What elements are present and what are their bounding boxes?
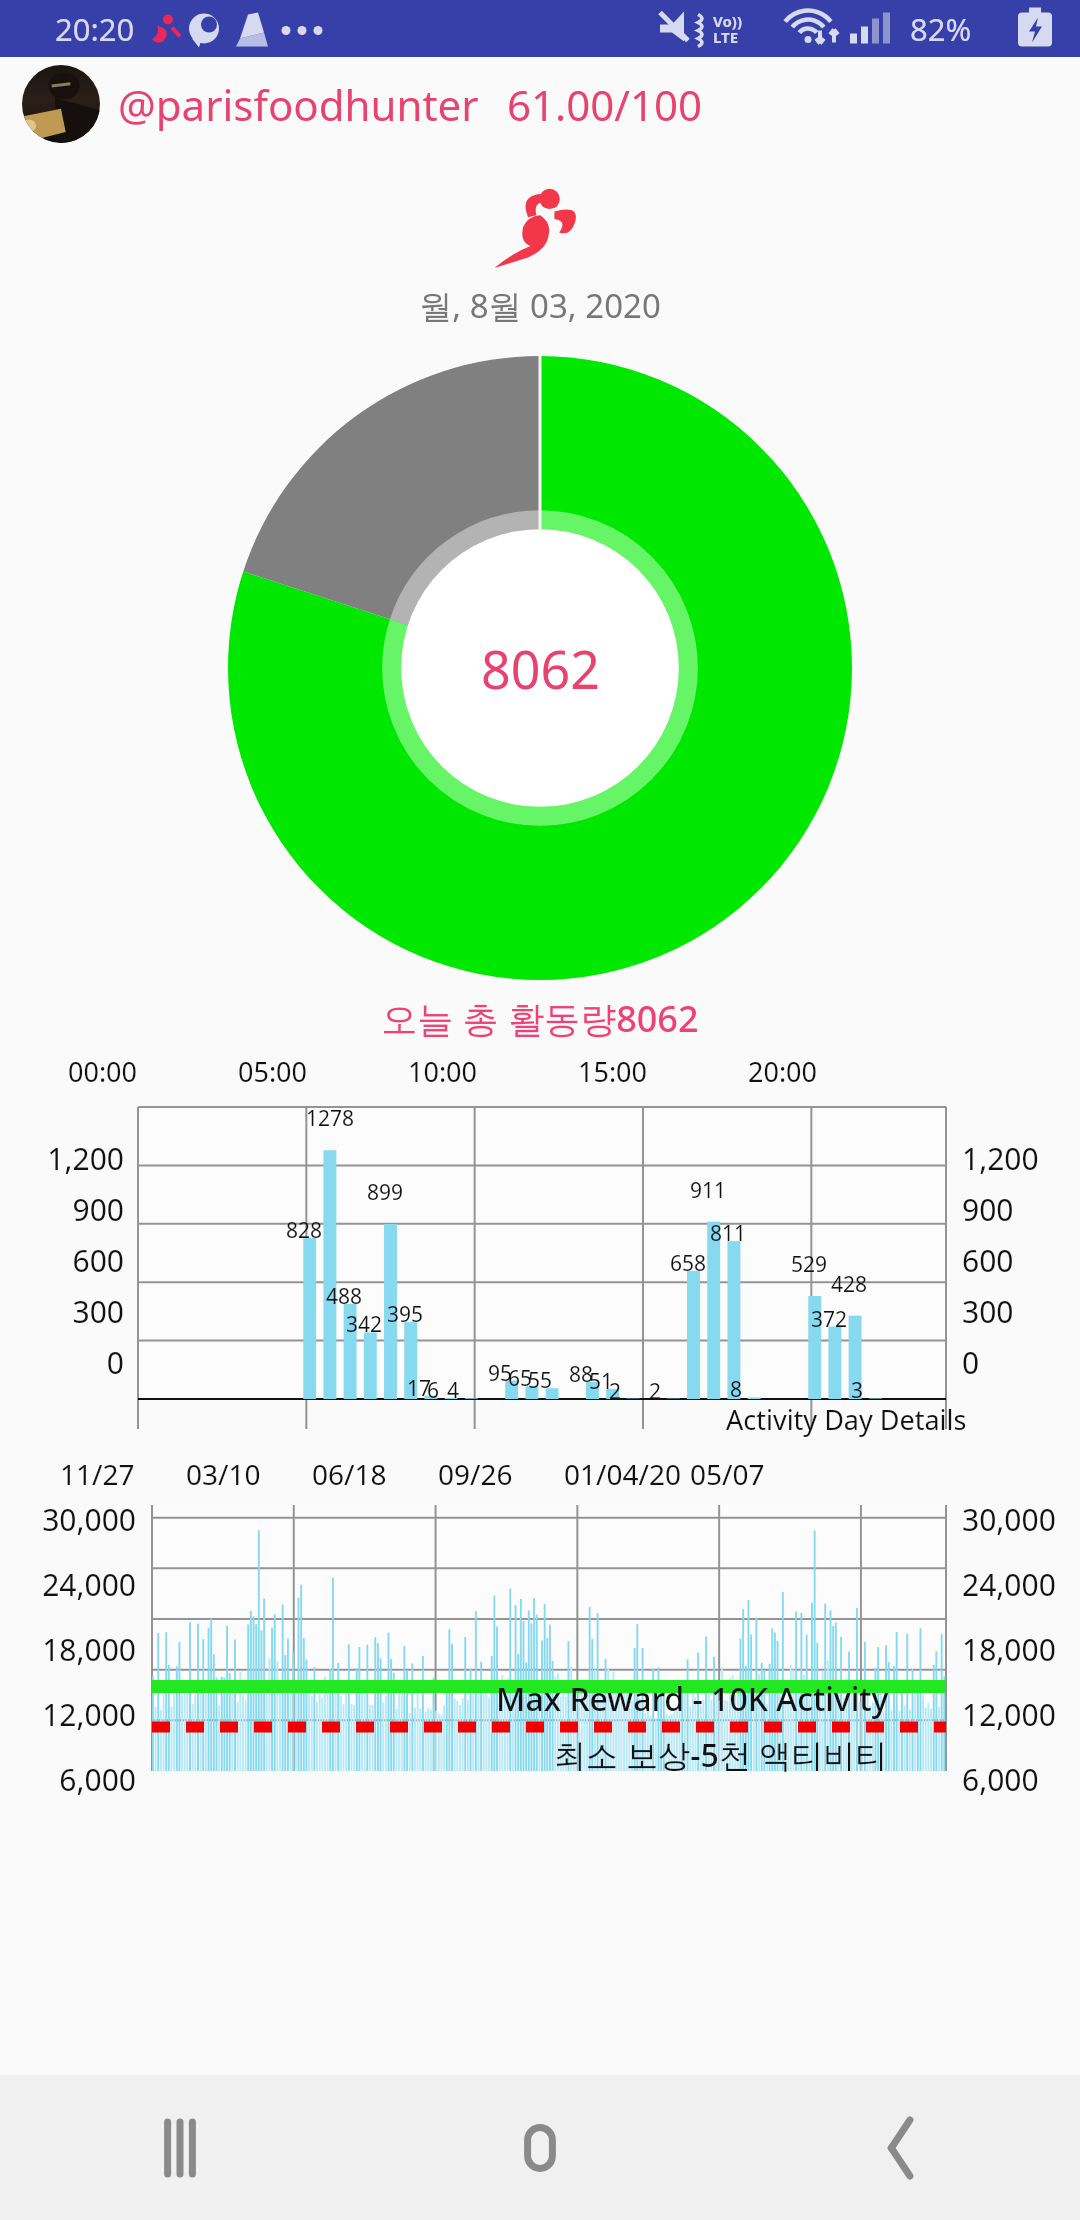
staticText: 911: [690, 1176, 727, 1205]
staticText: 01/04/20: [564, 1455, 681, 1493]
staticText: @parisfoodhunter: [118, 76, 479, 133]
staticText: 6: [427, 1376, 440, 1405]
staticText: 20:20: [55, 8, 135, 50]
button[interactable]: Home: [360, 2075, 720, 2220]
staticText: 8062: [481, 633, 600, 704]
staticText: 05/07: [690, 1455, 765, 1493]
staticText: 395: [387, 1300, 424, 1329]
staticText: 488: [326, 1282, 363, 1311]
staticText: 600: [16, 1240, 124, 1281]
staticText: 828: [286, 1216, 323, 1245]
staticText: 600: [962, 1240, 1014, 1281]
staticText: 1,200: [16, 1138, 124, 1179]
staticText: 0: [16, 1342, 124, 1383]
staticText: 658: [670, 1249, 707, 1278]
staticText: 17: [407, 1374, 432, 1403]
staticText: 6,000: [6, 1759, 136, 1800]
staticText: 최소 보상-5천 액티비티: [554, 1733, 888, 1777]
staticText: 6,000: [962, 1759, 1039, 1800]
staticText: 18,000: [6, 1629, 136, 1670]
staticText: 오늘 총 활동량8062: [0, 994, 1080, 1043]
staticText: 05:00: [238, 1053, 308, 1090]
staticText: 342: [346, 1310, 383, 1339]
button[interactable]: 30,000: [0, 1499, 1080, 1791]
staticText: 03/10: [186, 1455, 261, 1493]
staticText: 61.00/100: [507, 76, 703, 133]
staticText: 300: [16, 1291, 124, 1332]
staticText: 12,000: [962, 1694, 1056, 1735]
staticText: 1278: [306, 1104, 355, 1133]
staticText: 900: [962, 1189, 1014, 1230]
staticText: 4: [447, 1376, 460, 1405]
staticText: 06/18: [312, 1455, 387, 1493]
staticText: 300: [962, 1291, 1014, 1332]
staticText: 12,000: [6, 1694, 136, 1735]
staticText: 24,000: [962, 1564, 1056, 1605]
staticText: 82%: [910, 8, 972, 50]
staticText: 18,000: [962, 1629, 1056, 1670]
staticText: 30,000: [962, 1499, 1056, 1540]
staticText: 51: [589, 1367, 614, 1396]
staticText: 55: [528, 1366, 553, 1395]
staticText: 900: [16, 1189, 124, 1230]
staticText: 8: [730, 1375, 743, 1404]
staticText: 09/26: [438, 1455, 513, 1493]
staticText: 529: [791, 1250, 828, 1279]
staticText: 95: [488, 1359, 513, 1388]
staticText: 11/27: [60, 1455, 135, 1493]
staticText: 24,000: [6, 1564, 136, 1605]
button[interactable]: Back: [720, 2075, 1080, 2220]
button[interactable]: @parisfoodhunter: [0, 57, 1080, 151]
staticText: 20:00: [748, 1053, 818, 1090]
staticText: Max Reward - 10K Activity: [496, 1677, 889, 1721]
staticText: 811: [710, 1219, 747, 1248]
staticText: 2: [649, 1377, 662, 1406]
staticText: Vo)) LTE: [713, 11, 742, 47]
staticText: 88: [569, 1360, 594, 1389]
button[interactable]: Recent apps: [0, 2075, 360, 2220]
staticText: 428: [831, 1270, 868, 1299]
staticText: Activity Day Details: [726, 1401, 967, 1438]
staticText: 372: [811, 1305, 848, 1334]
staticText: 1,200: [962, 1138, 1039, 1179]
staticText: 899: [367, 1178, 404, 1207]
staticText: 15:00: [578, 1053, 648, 1090]
staticText: 2: [609, 1377, 622, 1406]
staticText: 65: [508, 1364, 533, 1393]
staticText: 0: [962, 1342, 980, 1383]
button[interactable]: 1,200: [0, 1093, 1080, 1441]
staticText: 월, 8월 03, 2020: [0, 283, 1080, 328]
staticText: 10:00: [408, 1053, 478, 1090]
staticText: 3: [851, 1376, 864, 1405]
staticText: 30,000: [6, 1499, 136, 1540]
staticText: 00:00: [68, 1053, 138, 1090]
